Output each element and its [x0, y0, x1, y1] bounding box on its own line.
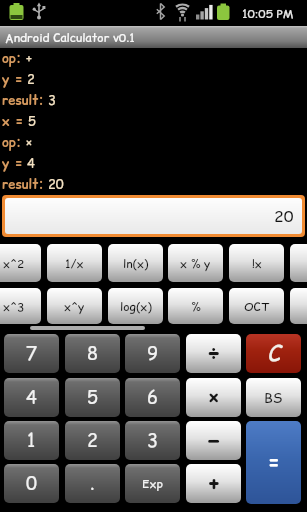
button[interactable]: OCT	[229, 288, 284, 324]
staticText: .	[90, 471, 95, 496]
staticText: 9	[147, 341, 158, 366]
button[interactable]: +	[186, 464, 241, 503]
staticText: +	[207, 468, 221, 499]
button[interactable]: ln(x)	[108, 244, 163, 282]
staticText: 3	[147, 428, 158, 453]
button[interactable]: BS	[246, 378, 301, 417]
button[interactable]: =	[246, 421, 301, 504]
staticText: =	[268, 449, 280, 476]
button[interactable]: !x	[229, 244, 284, 282]
button[interactable]: 1	[4, 421, 59, 460]
button[interactable]	[290, 244, 307, 282]
staticText: 7	[26, 341, 37, 366]
button[interactable]: ÷	[186, 334, 241, 373]
staticText: Exp	[142, 475, 163, 492]
staticText: x =	[2, 112, 24, 130]
staticText: 8	[87, 341, 98, 366]
staticText: 10:05 PM	[242, 5, 294, 22]
button[interactable]: 0	[4, 464, 59, 503]
button[interactable]: C	[246, 334, 301, 373]
button[interactable]: 2	[65, 421, 120, 460]
staticText: 0	[26, 471, 37, 496]
staticText: ln(x)	[123, 255, 149, 272]
staticText: 5	[24, 112, 36, 130]
button[interactable]	[290, 288, 307, 324]
staticText: x^y	[64, 298, 85, 315]
staticText: result:	[2, 91, 44, 109]
staticText: 4	[23, 154, 35, 172]
button[interactable]: 20	[5, 198, 302, 234]
staticText: y =	[2, 154, 23, 172]
staticText: x % y	[180, 255, 211, 272]
staticText: 20	[274, 205, 294, 227]
button[interactable]: Exp	[125, 464, 180, 503]
button[interactable]: log(x)	[108, 288, 163, 324]
staticText: 1/x	[65, 255, 84, 272]
button[interactable]: ×	[186, 378, 241, 417]
staticText: !x	[252, 255, 262, 272]
staticText: y =	[2, 70, 23, 88]
staticText: 2	[87, 428, 98, 453]
button[interactable]: x^y	[47, 288, 102, 324]
staticText: BS	[264, 388, 283, 408]
staticText: +	[22, 49, 33, 67]
button[interactable]: .	[65, 464, 120, 503]
staticText: Android Calculator v0.1	[5, 29, 135, 46]
staticText: x^3	[3, 298, 25, 315]
button[interactable]: 8	[65, 334, 120, 373]
staticText: OCT	[244, 298, 269, 315]
staticText: result:	[2, 175, 44, 193]
staticText: %	[191, 298, 201, 315]
button[interactable]: %	[168, 288, 223, 324]
staticText: ×	[22, 133, 33, 151]
button[interactable]: 6	[125, 378, 180, 417]
staticText: log(x)	[120, 298, 152, 315]
button[interactable]: −	[186, 421, 241, 460]
staticText: op:	[2, 133, 22, 151]
button[interactable]: 4	[4, 378, 59, 417]
button[interactable]: 7	[4, 334, 59, 373]
staticText: ×	[207, 382, 221, 413]
button[interactable]: x % y	[168, 244, 223, 282]
staticText: 1	[27, 428, 36, 453]
staticText: ÷	[207, 338, 221, 369]
staticText: 2	[23, 70, 35, 88]
button[interactable]: x^2	[0, 244, 41, 282]
staticText: −	[207, 425, 221, 456]
button[interactable]: 9	[125, 334, 180, 373]
staticText: C	[267, 338, 281, 369]
button[interactable]: 5	[65, 378, 120, 417]
staticText: 4	[26, 385, 37, 410]
staticText: 5	[87, 385, 98, 410]
button[interactable]: 1/x	[47, 244, 102, 282]
button[interactable]: 3	[125, 421, 180, 460]
button[interactable]: x^3	[0, 288, 41, 324]
staticText: 20	[44, 175, 64, 193]
staticText: 6	[147, 385, 158, 410]
staticText: 3	[44, 91, 56, 109]
staticText: x^2	[3, 255, 25, 272]
staticText: op:	[2, 49, 22, 67]
